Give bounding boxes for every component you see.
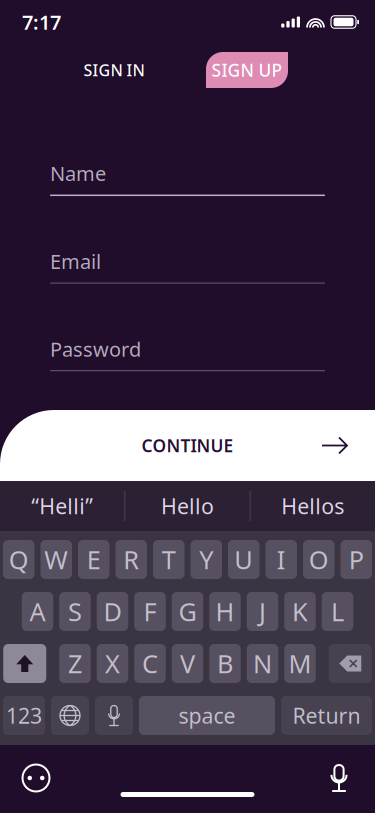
staticText: space <box>178 701 235 730</box>
button[interactable]: Delete <box>329 644 372 683</box>
button[interactable]: V <box>172 644 203 683</box>
staticText: Password <box>50 336 141 362</box>
staticText: Email <box>50 248 101 275</box>
button[interactable]: O <box>303 540 334 579</box>
staticText: “Helli” <box>31 492 93 520</box>
button[interactable]: M <box>284 644 316 683</box>
button[interactable]: B <box>209 644 241 683</box>
button[interactable]: Q <box>3 540 34 579</box>
staticText: CONTINUE <box>141 434 233 457</box>
staticText: X <box>105 647 120 680</box>
button[interactable]: Next keyboard <box>51 696 89 735</box>
staticText: Y <box>199 543 213 576</box>
button[interactable]: A <box>22 592 53 631</box>
button[interactable]: Emoji <box>14 758 58 798</box>
button[interactable]: W <box>40 540 72 579</box>
button[interactable]: U <box>228 540 259 579</box>
button[interactable]: SIGN IN <box>60 52 168 88</box>
staticText: C <box>142 647 158 680</box>
button[interactable]: Dictate <box>317 758 361 798</box>
staticText: N <box>253 647 272 680</box>
staticText: V <box>180 647 195 680</box>
button[interactable]: J <box>247 592 278 631</box>
staticText: M <box>288 647 311 680</box>
button[interactable]: X <box>97 644 128 683</box>
button[interactable]: L <box>322 592 353 631</box>
staticText: S <box>68 595 82 628</box>
button[interactable]: Hello <box>125 481 250 531</box>
button[interactable]: Y <box>190 540 222 579</box>
staticText: B <box>217 647 233 680</box>
staticText: T <box>162 543 176 576</box>
button[interactable]: P <box>340 540 372 579</box>
staticText: Q <box>9 543 29 576</box>
button[interactable]: T <box>153 540 184 579</box>
staticText: Return <box>292 701 360 730</box>
staticText: Z <box>68 647 82 680</box>
button[interactable]: S <box>59 592 91 631</box>
staticText: SIGN UP <box>211 58 282 81</box>
button[interactable]: CONTINUE <box>0 410 375 481</box>
button[interactable]: SIGN UP <box>206 52 288 88</box>
staticText: Hellos <box>281 492 344 520</box>
staticText: 7:17 <box>22 9 61 35</box>
staticText: L <box>331 595 344 628</box>
staticText: W <box>44 543 68 576</box>
staticText: F <box>143 595 156 628</box>
staticText: O <box>309 543 329 576</box>
button[interactable]: Z <box>59 644 91 683</box>
staticText: G <box>178 595 196 628</box>
button[interactable]: N <box>247 644 278 683</box>
staticText: Hello <box>161 492 214 520</box>
button[interactable]: Shift <box>3 644 46 683</box>
staticText: D <box>103 595 121 628</box>
button[interactable]: E <box>78 540 109 579</box>
button[interactable]: R <box>115 540 147 579</box>
button[interactable]: Dictate <box>95 696 133 735</box>
staticText: 123 <box>6 701 42 730</box>
staticText: SIGN IN <box>83 59 144 81</box>
staticText: K <box>292 595 308 628</box>
button[interactable]: space <box>139 696 275 735</box>
button[interactable]: G <box>172 592 203 631</box>
staticText: E <box>87 543 101 576</box>
button[interactable]: I <box>265 540 297 579</box>
button[interactable]: Hellos <box>251 481 375 531</box>
staticText: R <box>123 543 139 576</box>
button[interactable]: “Helli” <box>0 481 124 531</box>
button[interactable]: 123 <box>3 696 45 735</box>
staticText: J <box>259 595 266 628</box>
button[interactable]: K <box>284 592 316 631</box>
button[interactable]: F <box>134 592 166 631</box>
button[interactable]: Return <box>281 696 372 735</box>
staticText: I <box>277 543 286 576</box>
staticText: H <box>215 595 234 628</box>
button[interactable]: C <box>134 644 166 683</box>
staticText: U <box>234 543 253 576</box>
button[interactable]: H <box>209 592 241 631</box>
staticText: A <box>29 595 45 628</box>
button[interactable]: D <box>97 592 128 631</box>
staticText: P <box>349 543 364 576</box>
staticText: Name <box>50 160 106 187</box>
